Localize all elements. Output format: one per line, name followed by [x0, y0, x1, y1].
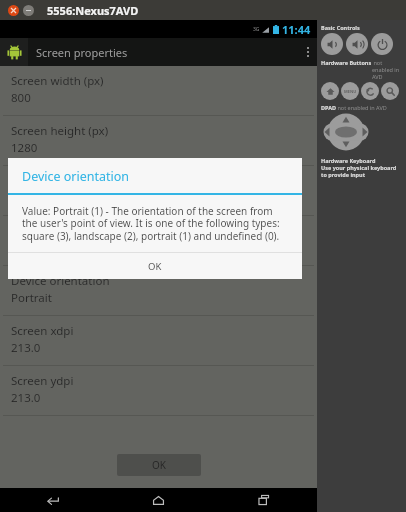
staticText: 1280 — [11, 140, 38, 156]
button[interactable]: Power — [371, 33, 393, 55]
button[interactable]: Screen properties — [0, 38, 317, 66]
button[interactable]: Menu — [341, 82, 359, 100]
staticText: Device orientation — [22, 168, 130, 185]
staticText: 213.0 — [11, 340, 41, 356]
button[interactable]: Back — [0, 488, 105, 512]
staticText: Hardware Buttons — [321, 59, 372, 66]
staticText: not enabled in AVD — [372, 59, 403, 80]
staticText: MENU — [344, 89, 357, 94]
button[interactable]: Screen height (px) — [0, 116, 317, 165]
staticText: 3G — [253, 26, 260, 33]
button[interactable]: Screen xdpi — [0, 316, 317, 365]
button[interactable]: Screen density (dp) — [0, 166, 317, 215]
staticText: Portrait — [11, 290, 52, 306]
staticText: Hardware Keyboard — [321, 157, 376, 164]
staticText: not enabled in AVD — [336, 104, 387, 111]
button[interactable]: D-pad — [321, 112, 371, 152]
button[interactable]: Screen width (px) — [0, 66, 317, 115]
staticText: 11:44 — [282, 22, 311, 37]
button[interactable]: Minimize — [23, 5, 34, 16]
staticText: Value: Portrait (1) - The orientation of… — [22, 204, 290, 243]
staticText: Screen ydpi — [11, 373, 74, 389]
staticText: DPAD — [321, 104, 336, 111]
staticText: Screen width (px) — [11, 73, 104, 89]
button[interactable]: Screen ydpi — [0, 366, 317, 415]
staticText: 5556:Nexus7AVD — [47, 3, 139, 18]
staticText: Screen density (dp) — [11, 173, 114, 189]
button[interactable]: Device orientation — [0, 266, 317, 315]
staticText: Screen xdpi — [11, 323, 74, 339]
staticText: 213.0 — [11, 390, 41, 406]
staticText: Finger — [11, 240, 46, 256]
button[interactable]: OK — [8, 253, 302, 279]
button[interactable]: OK — [117, 454, 201, 476]
button[interactable]: Volume down — [321, 33, 343, 55]
staticText: OK — [148, 260, 162, 273]
button[interactable]: Home — [105, 488, 211, 512]
button[interactable]: Screen type (touch) — [0, 216, 317, 265]
staticText: Basic Controls — [321, 24, 360, 31]
staticText: Screen type (touch) — [11, 223, 115, 239]
button[interactable]: Recent apps — [211, 488, 317, 512]
button[interactable]: Close — [8, 5, 19, 16]
staticText: 213 — [11, 190, 31, 206]
staticText: Use your physical keyboard to provide in… — [321, 164, 403, 178]
staticText: 800 — [11, 90, 31, 106]
button[interactable]: Volume up — [346, 33, 368, 55]
staticText: OK — [152, 458, 166, 472]
staticText: Device orientation — [11, 273, 110, 289]
button[interactable]: More options — [299, 38, 317, 66]
button[interactable]: Back — [361, 82, 379, 100]
button[interactable]: Search — [381, 82, 399, 100]
staticText: Screen height (px) — [11, 123, 109, 139]
staticText: Screen properties — [36, 45, 128, 60]
button[interactable]: Home — [321, 82, 339, 100]
